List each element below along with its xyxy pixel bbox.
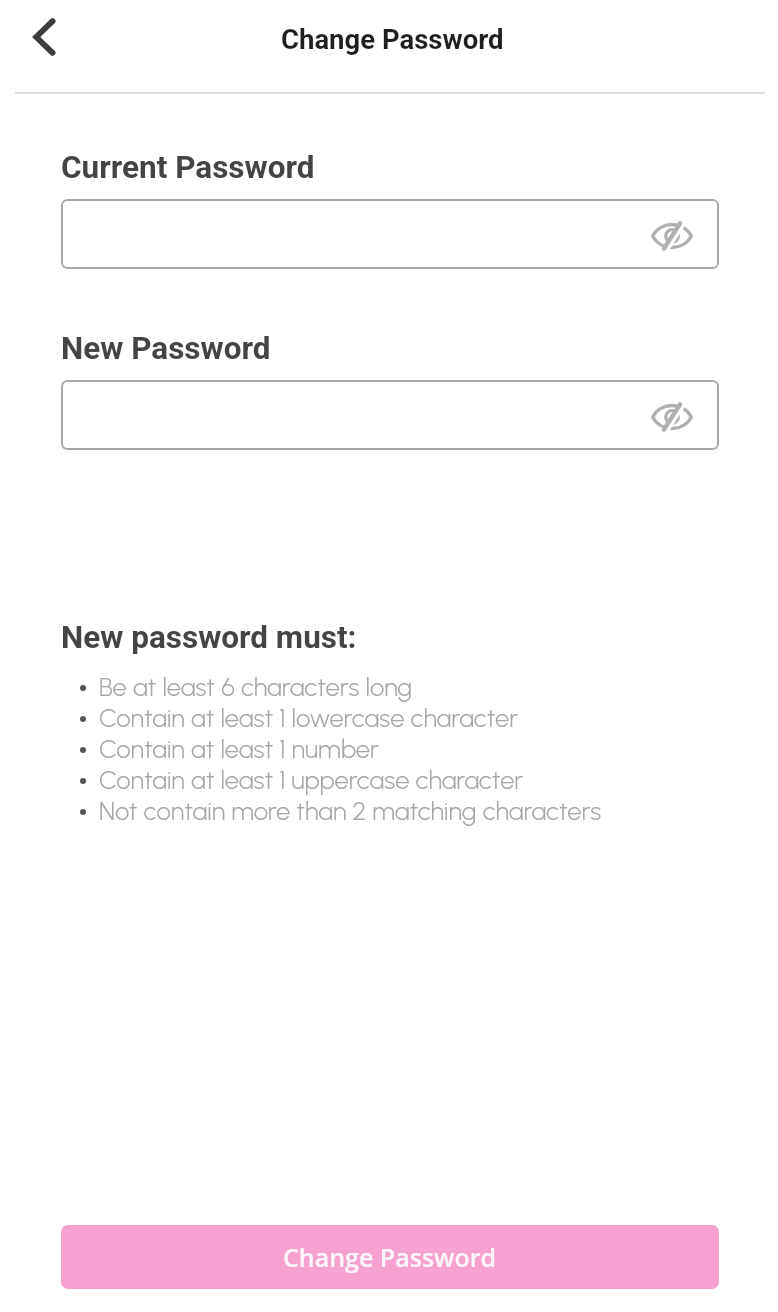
staticText: Change Password [283,1240,497,1274]
staticText: Current Password [61,149,315,186]
button[interactable]: Show password [644,389,700,445]
button[interactable]: Show password [644,208,700,264]
staticText: Not contain more than 2 matching charact… [99,796,602,827]
button[interactable]: Show password [61,380,719,450]
staticText: New password must: [61,619,357,656]
staticText: Contain at least 1 number [99,734,379,765]
button[interactable]: Back [15,6,77,68]
staticText: New Password [61,330,271,367]
button[interactable]: Show password [61,199,719,269]
staticText: Contain at least 1 uppercase character [99,765,524,796]
staticText: Be at least 6 characters long [99,672,413,703]
staticText: Contain at least 1 lowercase character [99,703,519,734]
staticText: Change Password [281,23,504,55]
button[interactable]: Change Password [61,1225,719,1289]
